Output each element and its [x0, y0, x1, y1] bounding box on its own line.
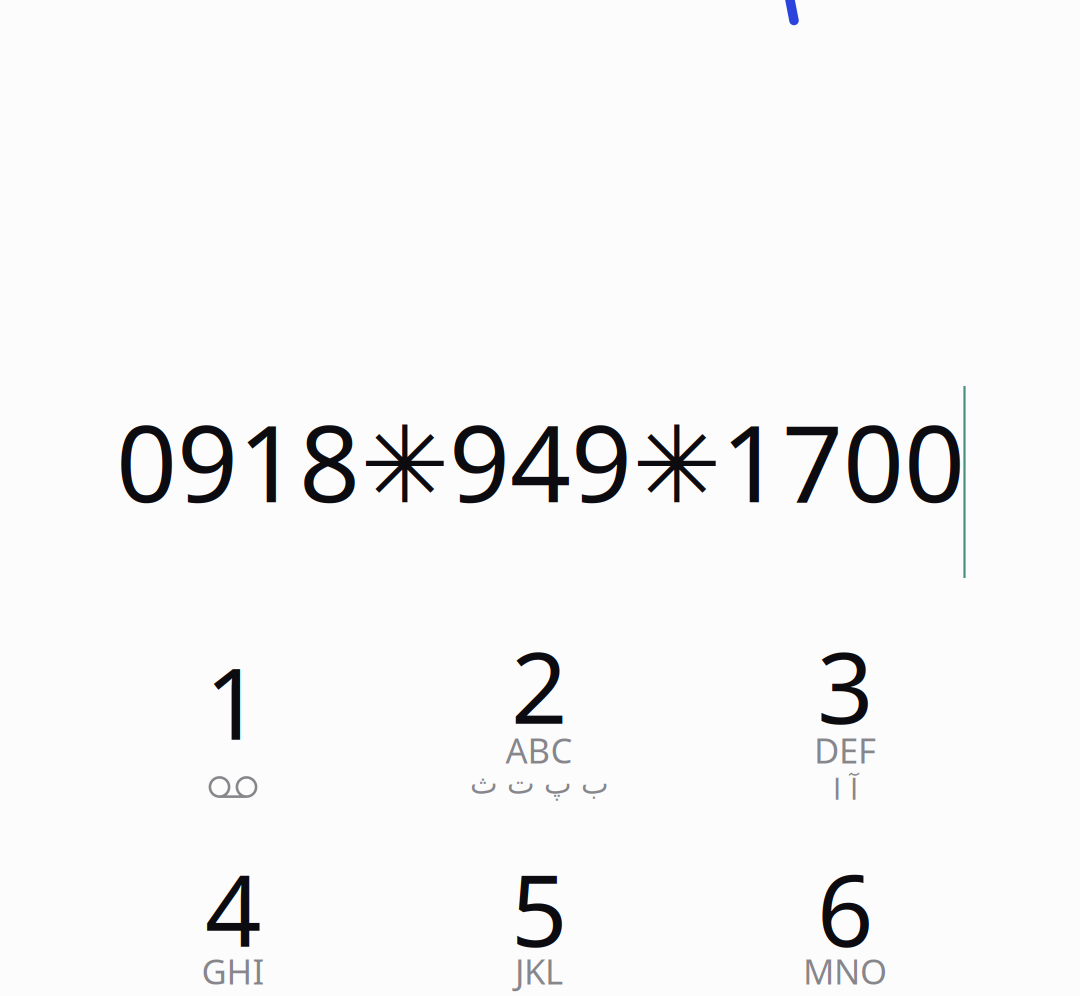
button[interactable]: 4: [80, 843, 386, 996]
staticText: MNO: [803, 948, 887, 994]
staticText: 3: [817, 620, 873, 751]
staticText: 1: [205, 636, 261, 767]
staticText: ب پ ت ث: [469, 767, 608, 800]
button[interactable]: 6: [692, 843, 998, 996]
staticText: GHI: [201, 948, 264, 994]
staticText: ABC: [505, 727, 572, 773]
staticText: 6: [817, 843, 873, 974]
staticText: آ ا: [832, 773, 857, 806]
staticText: 2: [511, 620, 567, 751]
button[interactable]: 2: [386, 620, 692, 827]
button[interactable]: 3: [692, 620, 998, 827]
staticText: JKL: [515, 948, 563, 994]
staticText: 4: [205, 843, 261, 974]
button[interactable]: 0918✳949✳1700: [116, 390, 968, 582]
staticText: 5: [511, 843, 567, 974]
staticText: 0918✳949✳1700: [116, 390, 965, 532]
button[interactable]: 1, voicemail: [80, 620, 386, 827]
button[interactable]: 5: [386, 843, 692, 996]
staticText: DEF: [814, 727, 876, 773]
